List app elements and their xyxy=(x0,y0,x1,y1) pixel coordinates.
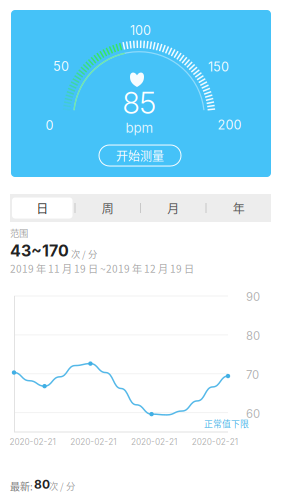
staticText: 200 xyxy=(217,117,241,133)
staticText: 日 xyxy=(36,199,48,217)
staticText: 最新: xyxy=(10,479,33,493)
staticText: 80 xyxy=(34,477,50,491)
staticText: 正常值下限 xyxy=(204,417,249,430)
staticText: 100 xyxy=(130,23,151,38)
staticText: 70 xyxy=(246,368,259,382)
button[interactable]: 月 xyxy=(141,194,205,222)
button[interactable]: 开始测量 xyxy=(99,145,181,166)
button[interactable]: 年 xyxy=(206,194,271,222)
staticText: 周 xyxy=(102,199,114,217)
button[interactable]: 日 xyxy=(10,194,74,222)
staticText: 60 xyxy=(246,407,260,421)
staticText: 年 xyxy=(233,199,245,217)
staticText: bpm xyxy=(125,120,153,136)
staticText: 开始测量 xyxy=(116,147,164,164)
staticText: 2020-02-21 xyxy=(9,437,55,447)
staticText: 次 / 分 xyxy=(71,247,97,260)
staticText: 2020-02-21 xyxy=(192,437,238,447)
staticText: 50 xyxy=(53,59,69,74)
staticText: 2020-02-21 xyxy=(131,437,177,447)
staticText: 次 / 分 xyxy=(49,479,75,492)
staticText: 85 xyxy=(122,85,156,121)
staticText: 80 xyxy=(246,329,260,343)
staticText: 0 xyxy=(45,118,53,133)
button[interactable]: 周 xyxy=(75,194,140,222)
staticText: 90 xyxy=(246,290,260,304)
staticText: 2020-02-21 xyxy=(70,437,116,447)
staticText: 范围 xyxy=(10,226,28,239)
staticText: 43~170 xyxy=(10,241,69,260)
staticText: 150 xyxy=(208,59,229,75)
staticText: 2019 年 11 月 19 日 ~2019 年 12 月 19 日 xyxy=(10,261,194,276)
staticText: 月 xyxy=(167,199,179,217)
